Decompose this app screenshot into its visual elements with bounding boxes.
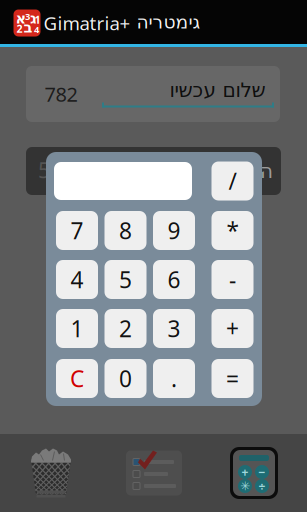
staticText: 8	[119, 215, 132, 245]
staticText: 1	[34, 12, 40, 27]
staticText: 5	[38, 156, 50, 184]
staticText: 782	[44, 81, 77, 107]
button[interactable]: C	[56, 359, 98, 398]
button[interactable]: 8	[104, 211, 146, 250]
button[interactable]: 4	[56, 260, 98, 299]
staticText: .	[171, 363, 177, 393]
staticText: +	[226, 313, 239, 343]
button[interactable]: 3	[153, 309, 195, 348]
staticText: 0	[119, 363, 132, 393]
staticText: גימטריה	[136, 11, 200, 33]
staticText: ב	[23, 19, 32, 36]
staticText: 3	[25, 10, 30, 23]
staticText: א	[15, 10, 26, 27]
staticText: 1	[70, 313, 83, 343]
button[interactable]: .	[153, 359, 195, 398]
staticText: ✳	[240, 479, 250, 493]
button[interactable]: 2	[104, 309, 146, 348]
button[interactable]: 7	[56, 211, 98, 250]
staticText: =	[226, 363, 239, 393]
button[interactable]: 1	[56, 309, 98, 348]
staticText: *	[226, 215, 238, 245]
staticText: 2	[119, 313, 132, 343]
button[interactable]: Clear	[0, 434, 102, 512]
button[interactable]: 0	[104, 359, 146, 398]
button[interactable]: /	[211, 161, 253, 200]
staticText: 2	[16, 21, 22, 36]
staticText: 7	[70, 215, 83, 245]
staticText: ה	[259, 160, 272, 182]
staticText: +	[241, 464, 248, 480]
button[interactable]: Calculator	[202, 434, 305, 512]
staticText: 9	[167, 215, 180, 245]
button[interactable]: History	[103, 434, 205, 512]
button[interactable]: +	[211, 309, 253, 348]
staticText: שלום עכשיו	[169, 79, 265, 101]
staticText: -	[229, 264, 236, 294]
staticText: Gimatria+	[43, 11, 130, 35]
button[interactable]: 6	[153, 260, 195, 299]
staticText: −	[258, 464, 265, 480]
staticText: 6	[167, 264, 180, 294]
button[interactable]: -	[211, 260, 253, 299]
button[interactable]: =	[211, 359, 253, 398]
staticText: C	[70, 363, 84, 393]
staticText: ÷	[258, 478, 265, 494]
staticText: /	[228, 166, 236, 196]
staticText: 4	[34, 23, 39, 36]
button[interactable]: *	[211, 211, 253, 250]
staticText: 4	[70, 264, 83, 294]
button[interactable]: 5	[104, 260, 146, 299]
staticText: 5	[119, 264, 132, 294]
staticText: ג	[29, 10, 36, 27]
button[interactable]: 9	[153, 211, 195, 250]
staticText: 3	[167, 313, 180, 343]
